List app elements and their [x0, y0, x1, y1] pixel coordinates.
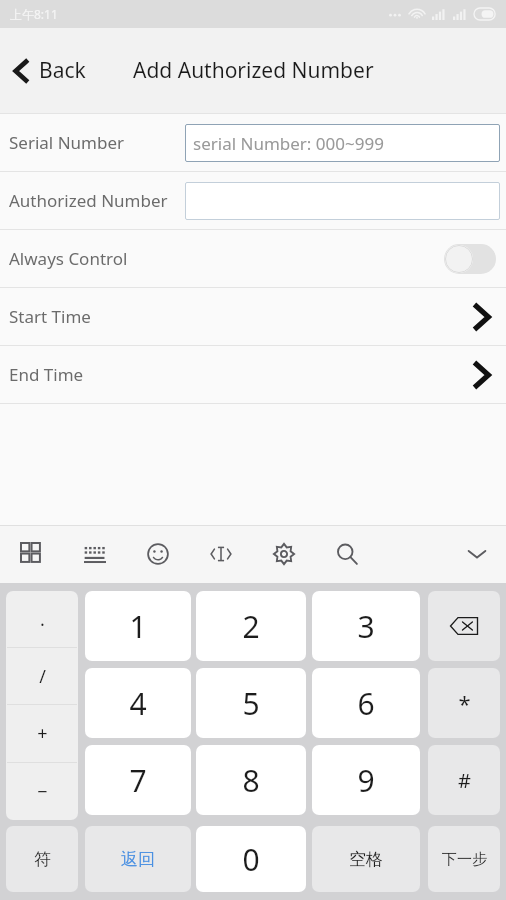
staticText: Back	[39, 56, 86, 85]
button[interactable]: 4	[85, 668, 191, 738]
button[interactable]: 7	[85, 745, 191, 815]
button[interactable]: 0	[196, 826, 306, 892]
staticText: serial Number: 000~999	[193, 132, 384, 155]
button[interactable]: Keyboard	[80, 539, 110, 569]
button[interactable]: Search	[332, 539, 362, 569]
staticText: +	[37, 721, 48, 746]
button[interactable]: .	[6, 591, 78, 647]
button[interactable]: Settings	[269, 539, 299, 569]
staticText: 1	[129, 606, 147, 647]
button[interactable]: Cursor	[206, 539, 236, 569]
button[interactable]: Always Control toggle	[444, 244, 496, 274]
button[interactable]: Always Control	[0, 230, 506, 287]
staticText: .	[40, 607, 45, 632]
button[interactable]: 6	[312, 668, 420, 738]
staticText: −	[37, 779, 48, 804]
button[interactable]: *	[428, 668, 500, 738]
button[interactable]: Serial Number	[0, 114, 506, 171]
button[interactable]: 返回	[85, 826, 191, 892]
staticText: 空格	[349, 849, 383, 870]
button[interactable]: −	[6, 763, 78, 820]
button[interactable]: +	[6, 705, 78, 762]
button[interactable]: 8	[196, 745, 306, 815]
button[interactable]: 3	[312, 591, 420, 661]
staticText: 5	[242, 683, 260, 724]
button[interactable]: 5	[196, 668, 306, 738]
button[interactable]: Emoji	[143, 539, 173, 569]
button[interactable]: /	[6, 648, 78, 704]
button[interactable]: Grid	[17, 539, 47, 569]
button[interactable]: #	[428, 745, 500, 815]
staticText: 7	[129, 760, 147, 801]
staticText: 返回	[121, 849, 155, 870]
staticText: 上午8:11	[10, 6, 58, 22]
staticText: 0	[242, 839, 260, 880]
staticText: 2	[242, 606, 260, 647]
button[interactable]: 1	[85, 591, 191, 661]
staticText: 符	[34, 849, 51, 870]
staticText: Add Authorized Number	[133, 56, 374, 85]
button[interactable]: Start Time	[0, 288, 506, 345]
staticText: Authorized Number	[9, 189, 168, 212]
staticText: Always Control	[9, 247, 128, 270]
staticText: 8	[242, 760, 260, 801]
button[interactable]: 2	[196, 591, 306, 661]
button[interactable]: Authorized Number	[0, 172, 506, 229]
staticText: 3	[357, 606, 375, 647]
button[interactable]: End Time	[0, 346, 506, 403]
button[interactable]: 符	[6, 826, 78, 892]
staticText: 9	[357, 760, 375, 801]
staticText: 4	[129, 683, 147, 724]
staticText: *	[458, 688, 471, 718]
staticText: Start Time	[9, 305, 91, 328]
button[interactable]: Backspace	[428, 591, 500, 661]
button[interactable]: 空格	[312, 826, 420, 892]
staticText: 下一步	[442, 850, 487, 869]
button[interactable]: 9	[312, 745, 420, 815]
staticText: Serial Number	[9, 131, 125, 154]
staticText: /	[39, 664, 46, 689]
staticText: End Time	[9, 363, 84, 386]
button[interactable]: Back	[0, 46, 100, 95]
staticText: #	[458, 767, 471, 794]
button[interactable]: 下一步	[428, 826, 500, 892]
staticText: 6	[357, 683, 375, 724]
button[interactable]: Hide keyboard	[462, 539, 492, 569]
